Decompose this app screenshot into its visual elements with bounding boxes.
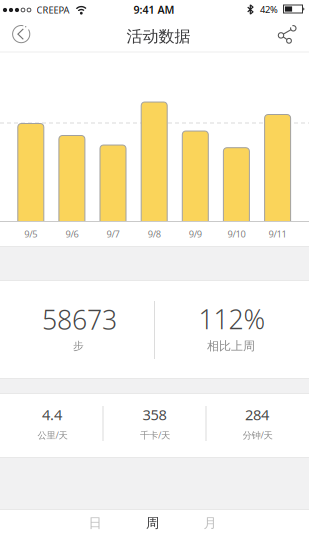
staticText: 358 bbox=[142, 405, 166, 424]
staticText: 4.4 bbox=[42, 405, 62, 424]
staticText: 月 bbox=[203, 515, 216, 531]
staticText: 9/10 bbox=[227, 228, 245, 240]
staticText: 相比上周 bbox=[207, 339, 255, 353]
staticText: 周 bbox=[146, 515, 159, 531]
staticText: 9/6 bbox=[65, 228, 78, 240]
staticText: 42% bbox=[260, 3, 278, 15]
staticText: 公里/天 bbox=[37, 429, 67, 441]
staticText: 9/9 bbox=[189, 228, 202, 240]
button[interactable]: 日 bbox=[67, 509, 123, 537]
staticText: 日 bbox=[88, 515, 101, 531]
button[interactable] bbox=[7, 20, 35, 48]
staticText: 步 bbox=[73, 339, 84, 352]
staticText: 分钟/天 bbox=[242, 429, 272, 441]
button[interactable] bbox=[272, 19, 302, 49]
staticText: 9/5 bbox=[24, 228, 37, 240]
staticText: 9/11 bbox=[269, 228, 287, 240]
staticText: 活动数据 bbox=[126, 27, 190, 46]
button[interactable]: 月 bbox=[182, 509, 238, 537]
staticText: 58673 bbox=[42, 302, 117, 337]
staticText: 9/8 bbox=[148, 228, 161, 240]
staticText: 112% bbox=[198, 301, 265, 337]
staticText: 284 bbox=[245, 405, 269, 424]
button[interactable]: 周 bbox=[124, 509, 180, 537]
staticText: CREEPA bbox=[36, 4, 69, 16]
staticText: 9:41 AM bbox=[133, 2, 174, 17]
staticText: 千卡/天 bbox=[140, 429, 170, 441]
staticText: 9/7 bbox=[106, 228, 119, 240]
